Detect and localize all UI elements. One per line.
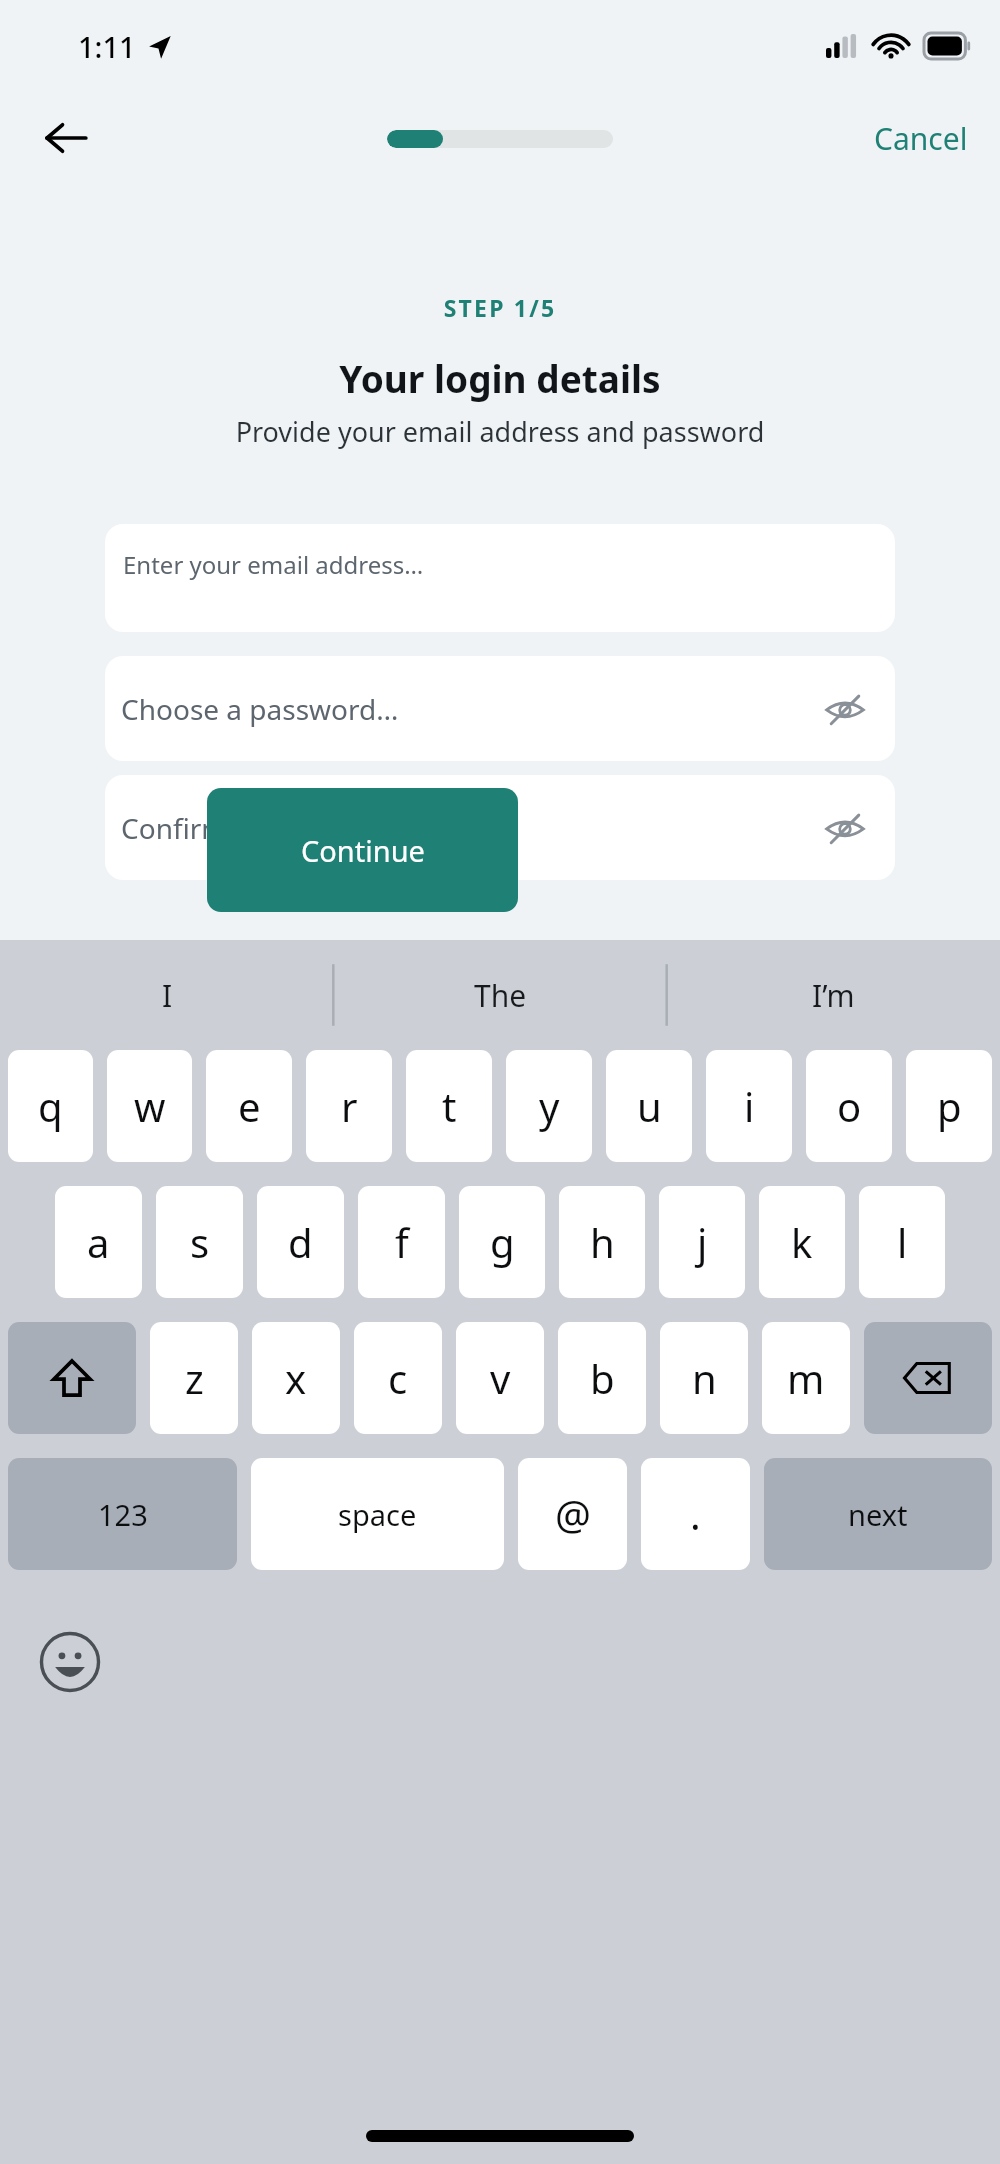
staticText: q [38,1079,63,1133]
button[interactable]: p [906,1050,992,1162]
button[interactable]: Back [34,106,98,170]
staticText: k [791,1215,813,1269]
button[interactable]: n [660,1322,748,1434]
staticText: Choose a password… [121,690,399,728]
button[interactable]: w [107,1050,192,1162]
staticText: c [388,1351,408,1405]
button[interactable]: g [459,1186,545,1298]
button[interactable]: y [506,1050,592,1162]
staticText: i [744,1079,755,1133]
button[interactable]: Confirm your password… [105,775,895,880]
button[interactable]: z [150,1322,238,1434]
staticText: m [787,1351,825,1405]
staticText: a [87,1215,110,1269]
button[interactable]: a [55,1186,142,1298]
staticText: Continue [301,831,425,870]
staticText: Your login details [0,353,1000,403]
staticText: z [185,1351,204,1405]
staticText: f [395,1215,409,1269]
button[interactable]: m [762,1322,850,1434]
staticText: space [338,1495,417,1534]
staticText: e [238,1079,261,1133]
staticText: I [162,975,173,1016]
staticText: 123 [98,1495,148,1534]
button[interactable]: j [659,1186,745,1298]
staticText: r [341,1079,358,1133]
button[interactable]: d [257,1186,344,1298]
button[interactable]: i [706,1050,792,1162]
staticText: g [490,1215,515,1269]
button[interactable]: space [251,1458,504,1570]
staticText: @ [555,1487,591,1541]
button[interactable]: o [806,1050,892,1162]
staticText: s [190,1215,210,1269]
button[interactable]: Continue [207,788,518,912]
staticText: o [837,1079,862,1133]
button[interactable]: u [606,1050,692,1162]
staticText: n [692,1351,717,1405]
staticText: Provide your email address and password [0,413,1000,450]
button[interactable]: next [764,1458,992,1570]
button[interactable]: @ [518,1458,627,1570]
button[interactable]: The [334,940,667,1050]
button[interactable]: Backspace [864,1322,992,1434]
button[interactable]: I [0,940,334,1050]
button[interactable]: c [354,1322,442,1434]
staticText: 1:11 [78,27,136,66]
button[interactable]: Enter your email address… [105,524,895,632]
button[interactable]: h [559,1186,645,1298]
staticText: b [590,1351,615,1405]
staticText: v [490,1351,511,1405]
staticText: y [539,1079,560,1133]
staticText: . [690,1487,701,1541]
staticText: x [285,1351,307,1405]
button[interactable]: Show password [817,681,873,737]
button[interactable]: Choose a password… [105,656,895,761]
button[interactable]: s [156,1186,243,1298]
staticText: I’m [812,975,855,1016]
staticText: t [442,1079,457,1133]
staticText: p [937,1079,962,1133]
staticText: Enter your email address… [123,548,424,581]
button[interactable]: x [252,1322,340,1434]
staticText: h [590,1215,615,1269]
staticText: Cancel [874,118,968,159]
button[interactable]: k [759,1186,845,1298]
button[interactable]: Emoji [36,1628,104,1696]
button[interactable]: b [558,1322,646,1434]
staticText: u [637,1079,662,1133]
button[interactable]: Cancel [868,112,974,165]
staticText: Confirm your password… [121,809,452,847]
staticText: STEP 1/5 [0,292,1000,323]
staticText: d [288,1215,313,1269]
button[interactable]: t [406,1050,492,1162]
staticText: The [474,975,527,1016]
button[interactable]: Shift [8,1322,136,1434]
button[interactable]: q [8,1050,93,1162]
button[interactable]: l [859,1186,945,1298]
staticText: j [697,1215,708,1269]
staticText: l [897,1215,908,1269]
button[interactable]: Show password [817,800,873,856]
button[interactable]: I’m [667,940,1000,1050]
button[interactable]: 123 [8,1458,237,1570]
staticText: w [134,1079,166,1133]
button[interactable]: e [206,1050,292,1162]
button[interactable]: r [306,1050,392,1162]
button[interactable]: v [456,1322,544,1434]
button[interactable]: . [641,1458,750,1570]
staticText: next [848,1495,908,1534]
button[interactable]: f [358,1186,445,1298]
